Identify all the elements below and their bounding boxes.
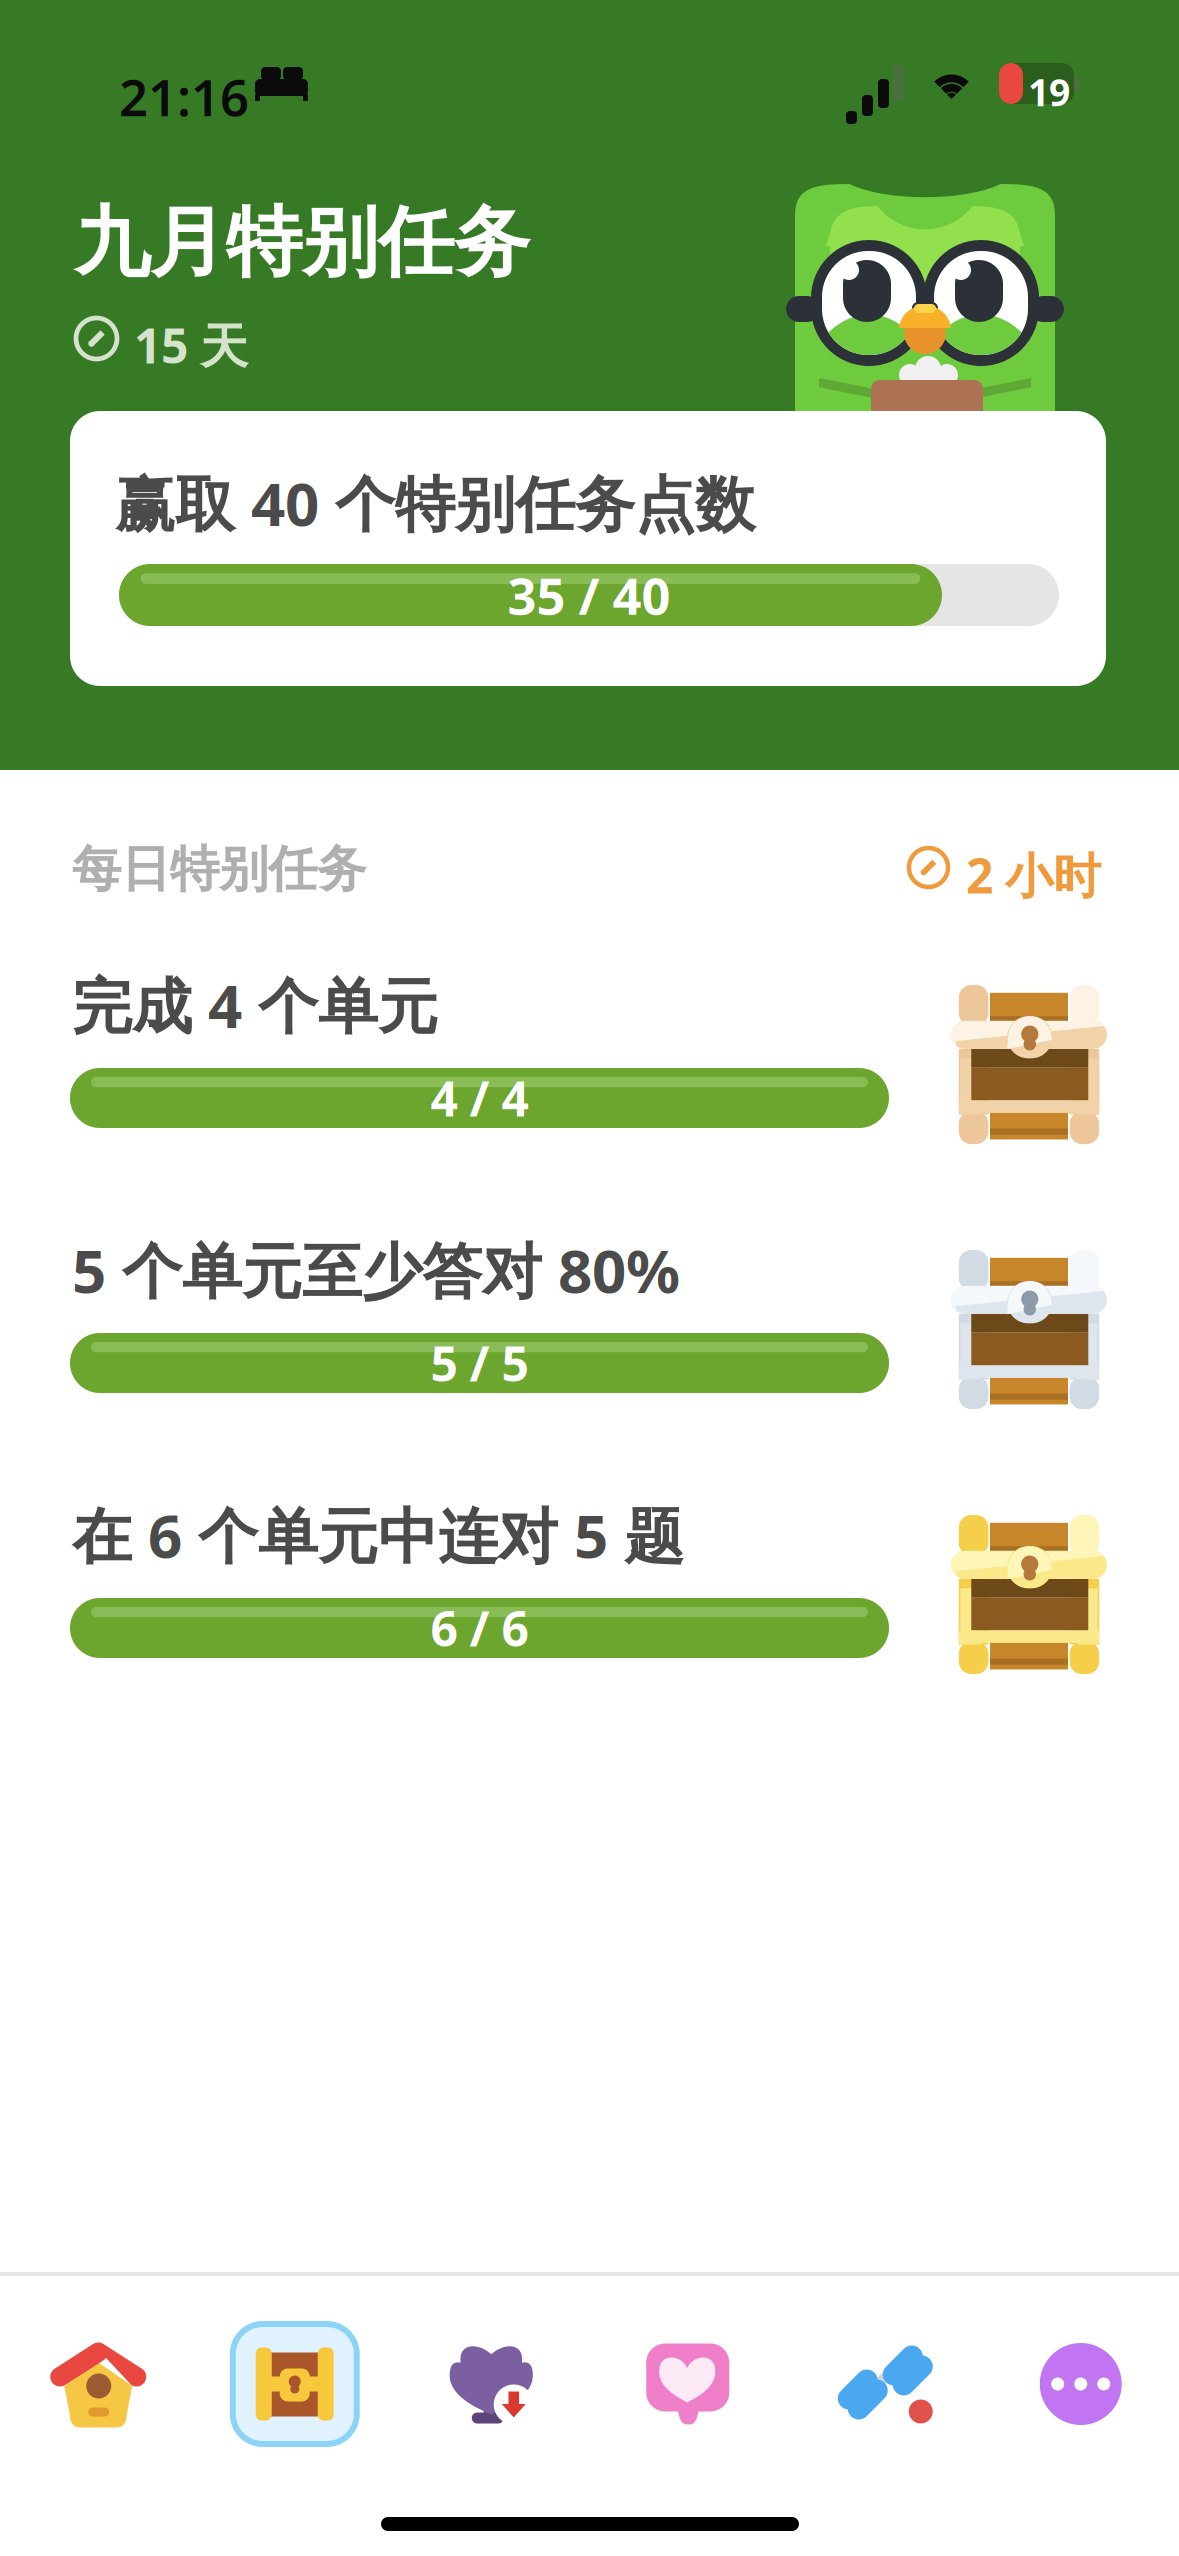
button[interactable]: 在 6 个单元中连对 5 题 [70, 1491, 1106, 1661]
staticText: 每日特别任务 [72, 839, 366, 900]
staticText: 完成 4 个单元 [72, 965, 438, 1045]
staticText: 5 / 5 [430, 1331, 528, 1395]
staticText: 赢取 40 个特别任务点数 [115, 463, 755, 543]
staticText: 21:16 [119, 63, 249, 130]
staticText: 2 小时 [966, 843, 1101, 907]
button[interactable]: Quests [196, 2309, 393, 2459]
button[interactable]: Messages [589, 2309, 786, 2459]
staticText: 35 / 40 [507, 561, 670, 629]
button[interactable]: Home [0, 2309, 196, 2459]
button[interactable]: Leaderboard [393, 2309, 589, 2459]
staticText: 5 个单元至少答对 80% [72, 1230, 680, 1310]
staticText: 4 / 4 [430, 1066, 528, 1130]
button[interactable]: 5 个单元至少答对 80% [70, 1226, 1106, 1396]
staticText: 19 [1028, 67, 1070, 117]
button[interactable]: 完成 4 个单元 [70, 961, 1106, 1131]
staticText: 15 天 [134, 313, 248, 377]
staticText: 6 / 6 [430, 1596, 528, 1660]
button[interactable]: More [982, 2309, 1179, 2459]
staticText: 在 6 个单元中连对 5 题 [72, 1495, 684, 1575]
button[interactable]: Practice [786, 2309, 982, 2459]
staticText: 九月特别任务 [74, 196, 530, 289]
